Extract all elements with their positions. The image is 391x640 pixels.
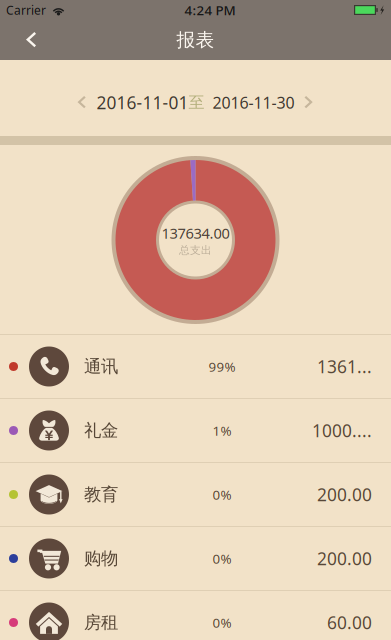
staticText: 至 — [188, 93, 204, 112]
button[interactable]: 通讯 — [0, 335, 391, 399]
button[interactable]: 2016-11-30 — [204, 84, 294, 121]
staticText: 60.00 — [327, 611, 372, 634]
staticText: 总支出 — [179, 244, 212, 257]
button[interactable]: Previous period — [67, 87, 96, 118]
staticText: 礼金 — [84, 420, 118, 441]
staticText: 1361... — [317, 355, 372, 378]
staticText: 房租 — [84, 612, 118, 633]
staticText: 通讯 — [84, 356, 118, 377]
staticText: 2016-11-01 — [96, 91, 188, 114]
staticText: 200.00 — [317, 547, 372, 570]
staticText: 99% — [208, 358, 235, 375]
button[interactable]: 2016-11-01 — [96, 83, 204, 122]
staticText: 购物 — [84, 548, 118, 569]
staticText: 4:24 PM — [184, 1, 235, 19]
staticText: 1% — [212, 422, 231, 439]
button[interactable]: 购物 — [0, 527, 391, 591]
staticText: Carrier — [6, 2, 46, 18]
button[interactable]: Back — [0, 20, 50, 60]
button[interactable]: 礼金 — [0, 399, 391, 463]
button[interactable]: Next period — [294, 87, 323, 118]
staticText: 1000.... — [312, 419, 372, 442]
staticText: 教育 — [84, 484, 118, 505]
staticText: 0% — [212, 486, 231, 503]
staticText: 0% — [212, 550, 231, 567]
staticText: 200.00 — [317, 483, 372, 506]
button[interactable]: 房租 — [0, 591, 391, 640]
staticText: 137634.00 — [161, 223, 229, 243]
staticText: 报表 — [176, 28, 214, 51]
staticText: 2016-11-30 — [212, 92, 294, 113]
button[interactable]: 教育 — [0, 463, 391, 527]
staticText: 0% — [212, 614, 231, 631]
